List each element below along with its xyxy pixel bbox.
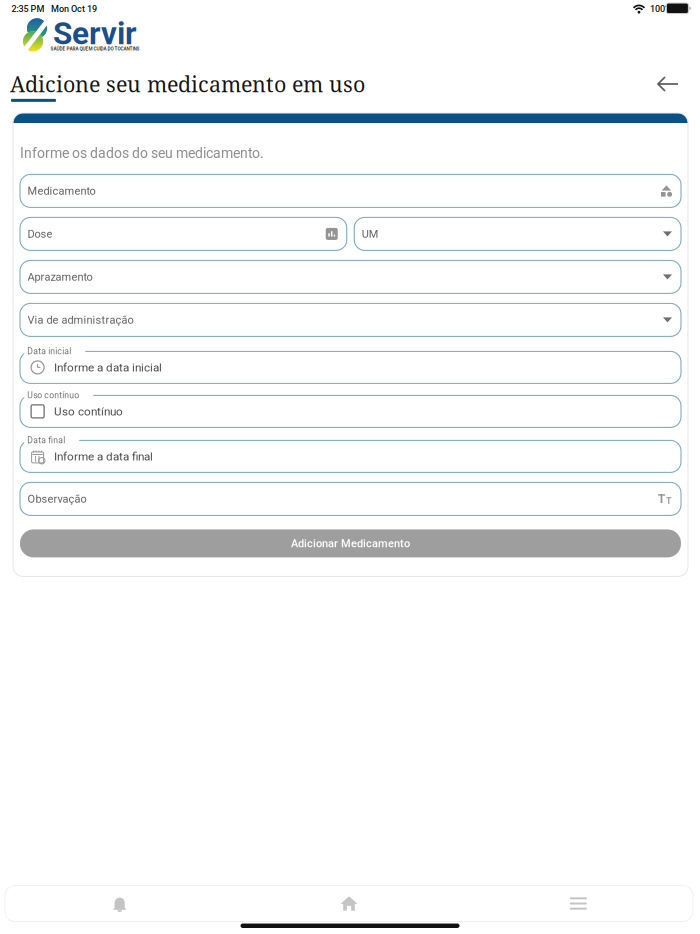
staticText: Observação bbox=[27, 492, 86, 505]
staticText: SAÚDE PARA QUEM CUIDA DO TOCANTINS bbox=[50, 46, 139, 52]
button[interactable]: Uso contínuo bbox=[20, 395, 681, 427]
button[interactable]: Voltar bbox=[646, 67, 690, 101]
staticText: Dose bbox=[27, 227, 52, 240]
button[interactable]: Início bbox=[234, 885, 464, 921]
button[interactable]: Via de administração bbox=[20, 303, 681, 336]
button[interactable]: Menu bbox=[464, 885, 693, 921]
staticText: Uso contínuo bbox=[27, 390, 79, 400]
button[interactable]: UM bbox=[354, 217, 681, 250]
button[interactable]: Observação bbox=[20, 482, 681, 515]
staticText: Informe a data inicial bbox=[54, 361, 162, 374]
staticText: T bbox=[657, 491, 665, 506]
staticText: Uso contínuo bbox=[54, 405, 123, 418]
button[interactable]: Informe a data final bbox=[20, 440, 681, 472]
staticText: UM bbox=[362, 227, 379, 240]
staticText: Aprazamento bbox=[27, 270, 92, 283]
staticText: 2:35 PM bbox=[12, 3, 45, 14]
staticText: Adicionar Medicamento bbox=[291, 537, 410, 550]
staticText: Medicamento bbox=[27, 184, 95, 197]
staticText: Adicione seu medicamento em uso bbox=[10, 69, 365, 99]
staticText: 100% bbox=[650, 3, 672, 14]
button[interactable]: Informe a data inicial bbox=[20, 351, 681, 383]
staticText: Data final bbox=[27, 435, 65, 445]
staticText: Informe os dados do seu medicamento. bbox=[20, 145, 264, 161]
button[interactable]: Aprazamento bbox=[20, 260, 681, 293]
staticText: T bbox=[666, 496, 672, 506]
staticText: Data inicial bbox=[27, 346, 71, 356]
button[interactable]: Medicamento bbox=[20, 174, 681, 207]
staticText: Servir bbox=[53, 15, 137, 52]
staticText: Via de administração bbox=[27, 313, 133, 326]
button[interactable]: Adicionar Medicamento bbox=[20, 529, 681, 557]
staticText: Informe a data final bbox=[54, 450, 153, 463]
button[interactable]: Dose bbox=[20, 217, 347, 250]
staticText: Mon Oct 19 bbox=[51, 3, 97, 14]
button[interactable]: Notificações bbox=[5, 885, 234, 921]
